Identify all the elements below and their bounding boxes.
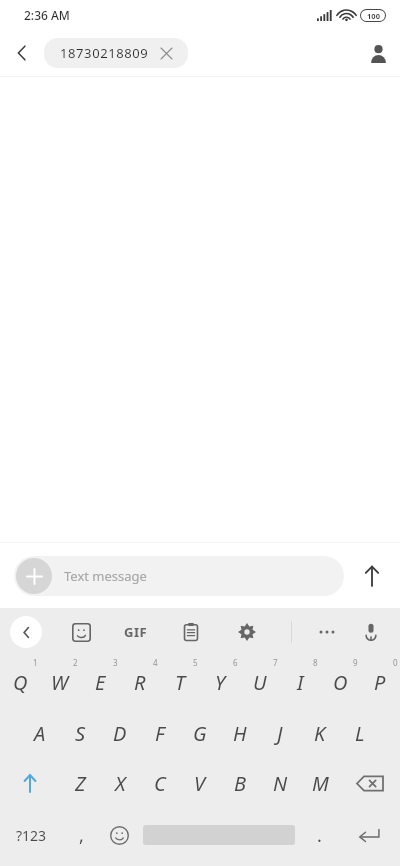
staticText: A [34,720,46,747]
button[interactable]: O [320,656,360,708]
button[interactable]: G [180,708,220,758]
button[interactable]: F [140,708,180,758]
button[interactable]: U [240,656,280,708]
button[interactable]: Shift [0,758,60,808]
button[interactable]: Space [138,808,300,862]
staticText: T [175,669,186,696]
button[interactable]: N [260,758,300,808]
button[interactable]: D [100,708,140,758]
staticText: S [75,720,86,747]
staticText: 4 [153,657,158,668]
button[interactable]: Back [0,31,44,75]
staticText: L [355,720,365,747]
button[interactable]: R [120,656,160,708]
button[interactable]: C [140,758,180,808]
button[interactable]: Enter [338,808,400,862]
button[interactable]: Q [0,656,40,708]
staticText: Z [75,770,86,797]
button[interactable]: Add attachment [16,558,52,594]
button[interactable]: Collapse toolbar [10,616,42,648]
staticText: 100 [367,11,380,21]
button[interactable]: Settings [230,615,264,649]
staticText: , [79,823,84,848]
staticText: Y [215,669,226,696]
button[interactable]: Contact details [356,31,400,75]
staticText: W [51,669,69,696]
button[interactable]: I [280,656,320,708]
staticText: K [314,720,326,747]
staticText: R [134,669,146,696]
button[interactable]: B [220,758,260,808]
staticText: G [193,720,207,747]
button[interactable]: V [180,758,220,808]
staticText: 2:36 AM [24,7,70,23]
staticText: . [317,823,322,848]
button[interactable]: Clipboard [174,615,208,649]
staticText: 3 [113,657,118,668]
staticText: J [277,720,283,747]
staticText: 2 [73,657,78,668]
button[interactable]: K [300,708,340,758]
button[interactable]: J [260,708,300,758]
button[interactable]: W [40,656,80,708]
button[interactable]: Backspace [340,758,400,808]
staticText: E [95,669,106,696]
button[interactable]: GIF [118,614,154,650]
staticText: Q [13,669,28,696]
staticText: GIF [124,623,148,641]
button[interactable]: . [300,808,338,862]
staticText: 6 [233,657,238,668]
button[interactable]: T [160,656,200,708]
staticText: H [233,720,247,747]
button[interactable]: E [80,656,120,708]
staticText: 7 [273,657,278,668]
staticText: M [312,770,329,797]
button[interactable]: Stickers [64,615,98,649]
button[interactable]: H [220,708,260,758]
staticText: D [113,720,127,747]
staticText: N [273,770,288,797]
button[interactable]: ?123 [0,808,62,862]
staticText: 1 [33,657,38,668]
staticText: I [297,669,304,696]
button[interactable]: L [340,708,380,758]
staticText: 5 [193,657,198,668]
staticText: 9 [353,657,358,668]
button[interactable]: P [360,656,400,708]
staticText: Text message [64,567,147,585]
staticText: P [374,669,386,696]
button[interactable]: Add attachment [14,556,344,596]
staticText: F [155,720,165,747]
staticText: X [115,770,126,797]
staticText: U [253,669,267,696]
button[interactable]: A [20,708,60,758]
staticText: 18730218809 [60,44,149,62]
staticText: O [333,669,348,696]
button[interactable]: , [62,808,100,862]
staticText: B [234,770,246,797]
button[interactable]: M [300,758,340,808]
button[interactable]: Emoji [100,808,138,862]
staticText: C [154,770,166,797]
button[interactable]: Send [344,548,400,604]
button[interactable]: X [100,758,140,808]
staticText: 0 [393,657,398,668]
button[interactable]: Z [60,758,100,808]
button[interactable]: More options [310,615,344,649]
staticText: V [194,770,206,797]
staticText: ?123 [16,826,47,845]
staticText: 8 [313,657,318,668]
button[interactable]: Y [200,656,240,708]
button[interactable]: Voice input [354,615,388,649]
button[interactable]: 18730218809 [44,38,188,68]
button[interactable]: S [60,708,100,758]
